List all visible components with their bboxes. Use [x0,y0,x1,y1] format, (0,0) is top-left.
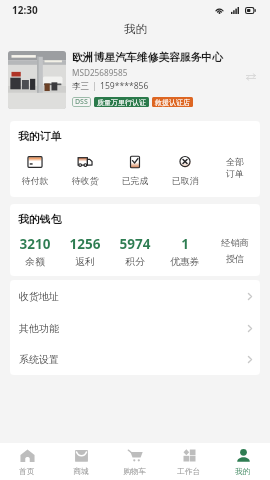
staticText: 系统设置 [19,353,59,366]
button[interactable]: 1 [160,235,210,268]
button[interactable]: 待收货 [60,156,110,186]
staticText: DSS [75,97,88,107]
button[interactable]: 系统设置 [10,344,260,375]
button[interactable]: 待付款 [10,156,60,186]
staticText: 159****856 [100,80,149,92]
staticText: | [90,80,100,92]
staticText: 我的订单 [18,130,62,144]
staticText: 余额 [10,256,60,268]
staticText: 1 [160,235,210,253]
button[interactable]: 我的 [216,443,270,480]
staticText: 我的钱包 [18,213,62,227]
staticText: 欧洲博星汽车维修美容服务中心 [72,51,224,65]
staticText: 我的 [124,22,147,36]
button[interactable]: 已取消 [160,156,210,186]
staticText: 救援认证店 [155,98,190,107]
staticText: 优惠券 [160,256,210,268]
staticText: 经销商 [210,237,260,249]
staticText: 5974 [110,235,160,253]
button[interactable]: 全部 订单 [210,156,260,179]
staticText: 质量万里行认证 [97,98,146,107]
staticText: 商城 [73,466,89,476]
staticText: 已完成 [110,175,160,186]
staticText: 收货地址 [19,290,59,303]
staticText: 待付款 [10,175,60,186]
button[interactable]: 购物车 [108,443,162,480]
button[interactable]: 商城 [54,443,108,480]
staticText: MSD25689585 [72,67,128,78]
staticText: 其他功能 [19,322,59,335]
button[interactable]: 经销商 [210,235,260,265]
button[interactable]: 3210 [10,235,60,268]
button[interactable]: Switch account [245,71,257,83]
staticText: 返利 [60,256,110,268]
button[interactable]: 工作台 [162,443,216,480]
staticText: 1256 [60,235,110,253]
button[interactable]: 5974 [110,235,160,268]
staticText: 我的 [235,466,251,476]
staticText: 首页 [19,466,35,476]
button[interactable]: 已完成 [110,156,160,186]
button[interactable]: 收货地址 [10,280,260,312]
staticText: 授信 [210,253,260,265]
staticText: 全部 订单 [210,156,260,179]
staticText: 工作台 [177,466,201,476]
staticText: 购物车 [123,466,147,476]
staticText: 待收货 [60,175,110,186]
staticText: 已取消 [160,175,210,186]
staticText: 12:30 [12,3,38,17]
staticText: 积分 [110,256,160,268]
button[interactable]: 1256 [60,235,110,268]
staticText: 李三 [72,81,90,92]
button[interactable]: 首页 [0,443,54,480]
button[interactable]: 其他功能 [10,312,260,344]
staticText: 3210 [10,235,60,253]
